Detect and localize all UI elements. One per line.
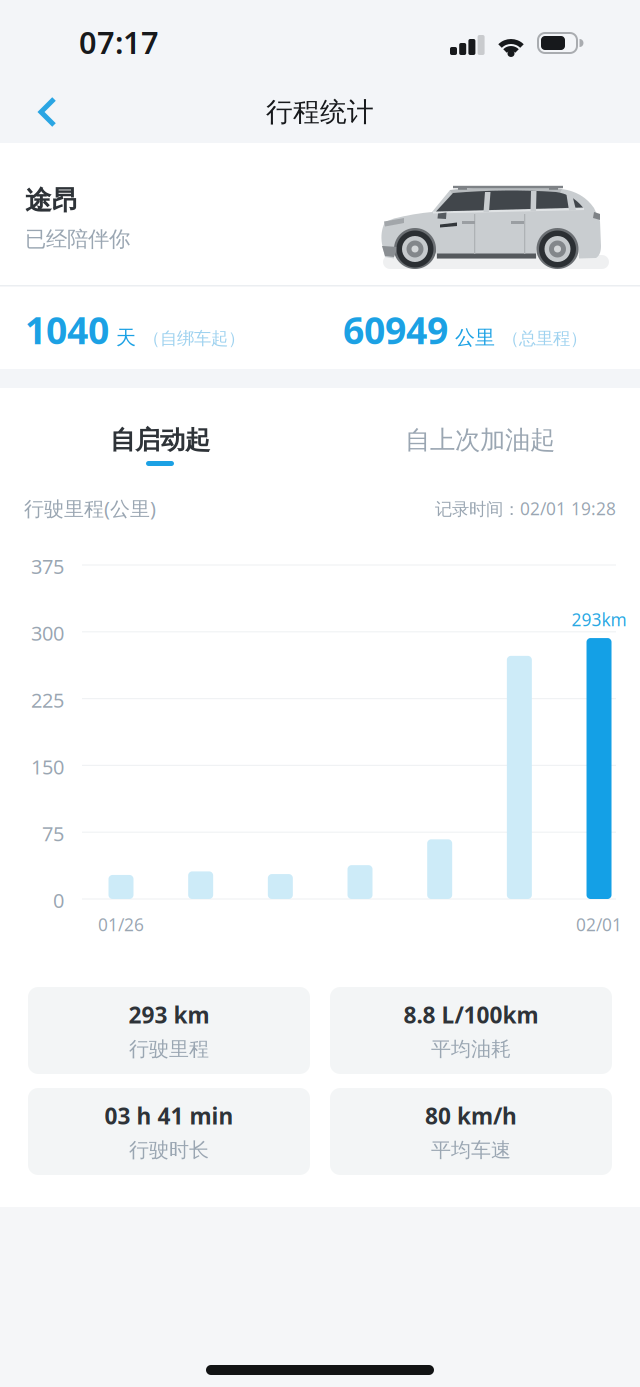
- staticText: 行驶时长: [129, 1138, 209, 1162]
- staticText: 途昂: [25, 184, 79, 217]
- staticText: 80 km/h: [425, 1101, 517, 1131]
- staticText: 8.8 L/100km: [403, 1000, 538, 1030]
- button[interactable]: Back: [28, 90, 72, 134]
- staticText: 01/26: [98, 913, 144, 936]
- button[interactable]: 自上次加油起: [320, 412, 640, 468]
- button[interactable]: 自启动起: [0, 412, 320, 468]
- staticText: 02/01: [576, 913, 622, 936]
- staticText: 天: [116, 325, 136, 350]
- staticText: 75: [42, 820, 64, 847]
- staticText: （自绑车起）: [143, 328, 245, 349]
- staticText: 记录时间：02/01 19:28: [435, 497, 616, 520]
- staticText: 60949: [343, 305, 448, 355]
- staticText: 行驶里程: [129, 1037, 209, 1061]
- staticText: 已经陪伴你: [25, 226, 130, 252]
- staticText: （总里程）: [502, 328, 587, 349]
- staticText: 225: [31, 687, 64, 713]
- staticText: 375: [31, 553, 64, 580]
- staticText: 平均车速: [431, 1138, 511, 1162]
- staticText: 07:17: [79, 22, 159, 62]
- staticText: 300: [31, 620, 64, 646]
- staticText: 1040: [25, 305, 109, 355]
- staticText: 公里: [455, 325, 495, 350]
- staticText: 293km: [571, 608, 626, 631]
- staticText: 150: [31, 753, 64, 780]
- staticText: 平均油耗: [431, 1037, 511, 1061]
- staticText: 行程统计: [266, 96, 374, 128]
- staticText: 自启动起: [110, 424, 210, 455]
- staticText: 03 h 41 min: [104, 1101, 233, 1131]
- staticText: 自上次加油起: [405, 424, 555, 455]
- staticText: 0: [53, 887, 64, 914]
- staticText: 293 km: [128, 1000, 209, 1030]
- staticText: 行驶里程(公里): [24, 495, 156, 522]
